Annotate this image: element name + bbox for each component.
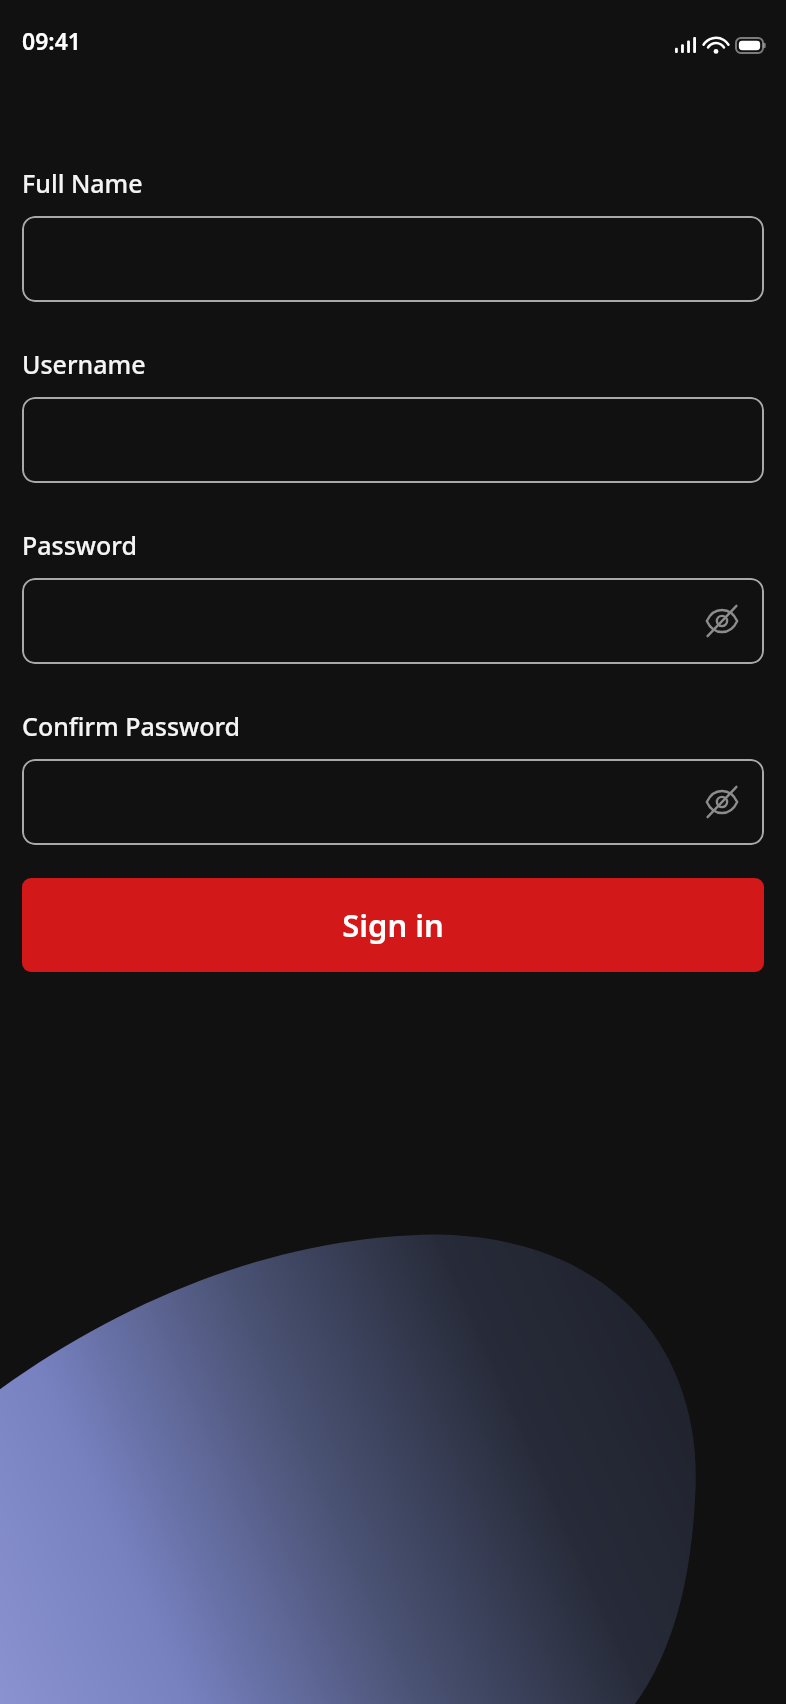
staticText: Confirm Password [22,709,241,743]
staticText: Username [22,347,146,381]
staticText: 09:41 [22,25,81,56]
button[interactable]: Show password [698,597,746,645]
button[interactable] [22,216,764,302]
staticText: Password [22,528,137,562]
button[interactable]: Sign in [22,878,764,972]
button[interactable]: Show password [22,759,764,845]
button[interactable]: Show password [22,578,764,664]
button[interactable] [22,397,764,483]
staticText: Sign in [342,904,444,946]
staticText: Full Name [22,166,143,200]
button[interactable]: Show password [698,778,746,826]
